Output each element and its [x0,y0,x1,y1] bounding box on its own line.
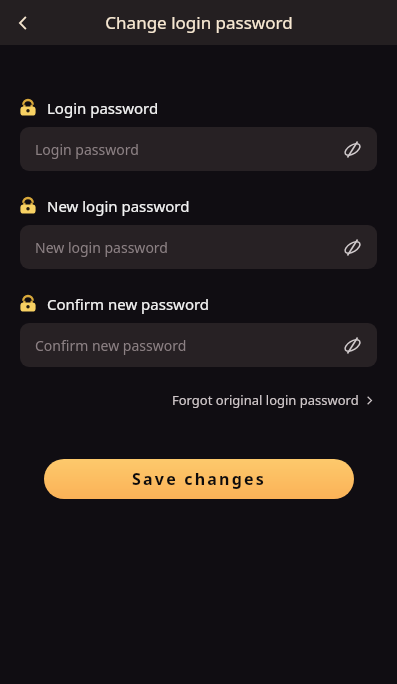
staticText: New login password [35,238,168,257]
staticText: New login password [47,196,190,216]
button[interactable]: Show password [335,132,369,166]
staticText: Confirm new password [35,336,187,355]
staticText: Confirm new password [47,294,210,314]
button[interactable]: Back [0,0,46,45]
button[interactable]: Forgot original login password [170,387,377,413]
button[interactable]: Confirm new password [20,323,377,367]
staticText: Login password [35,140,139,159]
button[interactable]: Save changes [44,459,354,499]
staticText: Login password [47,98,159,118]
button[interactable]: Show password [335,230,369,264]
staticText: Save changes [132,468,266,490]
button[interactable]: New login password [20,225,377,269]
staticText: Change login password [105,11,293,34]
button[interactable]: Login password [20,127,377,171]
button[interactable]: Show password [335,328,369,362]
staticText: Forgot original login password [172,391,359,409]
